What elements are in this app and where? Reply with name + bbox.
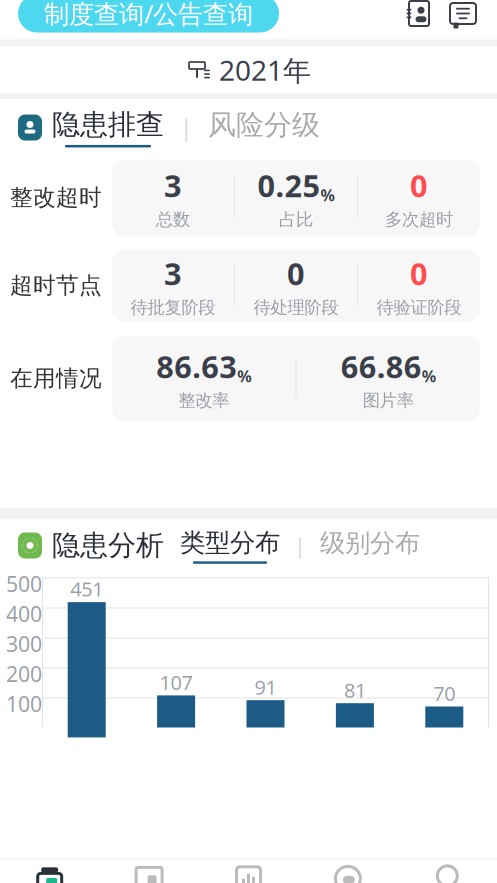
staticText: 图片率 [363, 390, 414, 411]
staticText: 整改超时 [10, 184, 102, 211]
staticText: 300 [6, 629, 42, 658]
staticText: 66.86 [341, 346, 422, 387]
button[interactable]: 制度查询/公告查询 [18, 0, 279, 32]
button[interactable]: 风采 [298, 860, 398, 883]
staticText: 107 [160, 669, 193, 695]
button[interactable]: 类型分布 [180, 527, 280, 564]
button[interactable]: 2021年 [0, 46, 497, 93]
staticText: 待处理阶段 [253, 297, 338, 318]
staticText: 在用情况 [10, 365, 102, 392]
button[interactable]: 隐患排查 [52, 108, 164, 147]
staticText: % [422, 365, 436, 387]
button[interactable]: 通讯录 [397, 0, 441, 35]
button[interactable]: 风险分级 [208, 108, 320, 147]
staticText: 0 [410, 165, 428, 206]
button[interactable]: 分析 [199, 860, 298, 883]
staticText: 70 [433, 680, 455, 706]
button[interactable]: 工作 [99, 860, 199, 883]
staticText: % [320, 184, 334, 206]
staticText: 3 [164, 253, 182, 294]
staticText: % [237, 365, 251, 387]
button[interactable]: 级别分布 [320, 527, 420, 563]
staticText: 超时节点 [10, 272, 102, 299]
staticText: 81 [344, 677, 366, 703]
staticText: 400 [6, 599, 42, 628]
staticText: 整改率 [178, 390, 229, 411]
staticText: 91 [254, 674, 276, 700]
staticText: 86.63 [156, 346, 237, 387]
staticText: 200 [6, 659, 42, 688]
staticText: 隐患分析 [52, 528, 164, 563]
staticText: 风险分级 [208, 108, 320, 142]
staticText: 待批复阶段 [130, 297, 215, 318]
staticText: 0 [287, 253, 305, 294]
staticText: 3 [164, 165, 182, 206]
staticText: 待验证阶段 [376, 297, 461, 318]
staticText: 类型分布 [180, 527, 280, 558]
staticText: | [180, 112, 192, 142]
staticText: 级别分布 [320, 527, 420, 558]
button[interactable]: 86.63 [112, 335, 480, 421]
staticText: 制度查询/公告查询 [44, 0, 253, 30]
button[interactable]: 首页 [0, 860, 99, 883]
staticText: 2021年 [219, 51, 311, 89]
staticText: 100 [6, 689, 42, 718]
staticText: | [294, 531, 306, 560]
button[interactable]: 3 [112, 159, 480, 235]
staticText: 0 [410, 253, 428, 294]
staticText: 总数 [156, 209, 190, 230]
staticText: 0.25 [257, 165, 320, 206]
staticText: 多次超时 [385, 209, 453, 230]
staticText: 500 [6, 569, 42, 598]
staticText: 隐患排查 [52, 108, 164, 142]
staticText: 占比 [279, 209, 313, 230]
button[interactable]: 消息 [441, 0, 485, 35]
button[interactable]: 我的 [398, 860, 497, 883]
button[interactable]: 3 [112, 249, 480, 321]
staticText: 451 [70, 576, 103, 602]
